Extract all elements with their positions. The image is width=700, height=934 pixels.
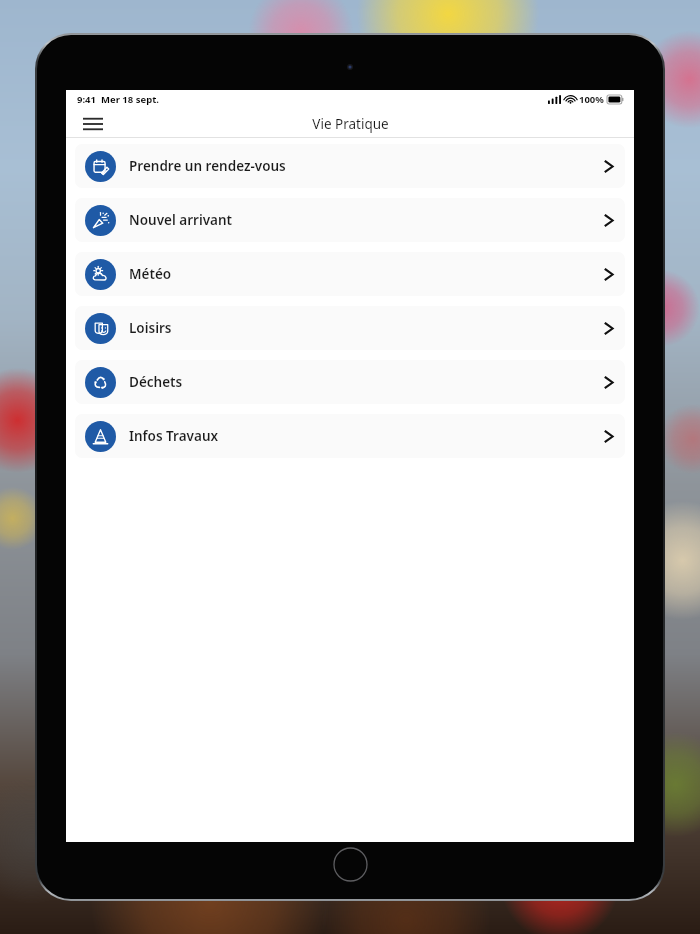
staticText: Météo <box>129 265 172 283</box>
staticText: Prendre un rendez-vous <box>129 157 286 175</box>
button[interactable]: Home <box>333 847 368 882</box>
staticText: 100% <box>579 93 604 106</box>
button[interactable]: Prendre un rendez-vous <box>75 144 625 188</box>
staticText: Loisirs <box>129 319 172 337</box>
staticText: Nouvel arrivant <box>129 211 233 229</box>
staticText: Mer 18 sept. <box>101 93 159 106</box>
staticText: Infos Travaux <box>129 427 219 445</box>
button[interactable]: Infos Travaux <box>75 414 625 458</box>
button[interactable]: Loisirs <box>75 306 625 350</box>
button[interactable]: Open navigation menu <box>73 109 113 138</box>
button[interactable]: Météo <box>75 252 625 296</box>
staticText: Déchets <box>129 373 183 391</box>
button[interactable]: Déchets <box>75 360 625 404</box>
staticText: 9:41 <box>77 93 96 106</box>
staticText: Vie Pratique <box>312 115 389 133</box>
button[interactable]: Nouvel arrivant <box>75 198 625 242</box>
